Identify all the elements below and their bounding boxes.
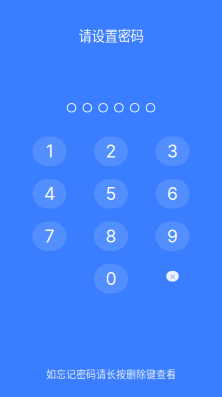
button[interactable]: 6 — [155, 179, 189, 208]
button[interactable]: 8 — [94, 221, 128, 251]
staticText: 9 — [167, 226, 178, 247]
button[interactable]: 3 — [155, 136, 189, 166]
staticText: × — [169, 270, 176, 283]
staticText: 如忘记密码请长按删除键查看 — [46, 367, 176, 381]
staticText: 请设置密码 — [78, 25, 143, 45]
staticText: 8 — [105, 226, 116, 247]
staticText: 5 — [105, 183, 116, 204]
button[interactable]: 4 — [32, 179, 66, 208]
staticText: 6 — [167, 183, 178, 204]
staticText: 4 — [44, 183, 55, 204]
button[interactable]: 1 — [32, 136, 66, 166]
button[interactable]: Delete — [155, 264, 189, 293]
button[interactable]: 5 — [94, 179, 128, 208]
staticText: 0 — [105, 268, 116, 289]
button[interactable]: 7 — [32, 221, 66, 251]
button[interactable]: 2 — [94, 136, 128, 166]
button[interactable]: 9 — [155, 221, 189, 251]
staticText: 2 — [105, 141, 116, 162]
staticText: 7 — [44, 226, 54, 247]
staticText: 3 — [167, 141, 178, 162]
button[interactable]: 0 — [94, 264, 128, 293]
staticText: 1 — [46, 141, 53, 162]
